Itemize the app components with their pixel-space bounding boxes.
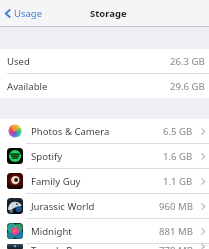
staticText: 1.1 GB — [163, 175, 193, 188]
staticText: Storage — [90, 7, 127, 20]
staticText: 770 MB — [159, 244, 193, 249]
button[interactable]: Spotify — [0, 144, 209, 168]
staticText: Family Guy — [31, 175, 81, 188]
staticText: Temple Run — [31, 244, 85, 249]
staticText: Spotify — [31, 150, 63, 163]
staticText: Usage — [14, 7, 43, 20]
staticText: Used — [7, 55, 30, 68]
button[interactable]: Photos & Camera — [0, 119, 209, 143]
button[interactable]: Back to Usage — [0, 4, 49, 23]
button[interactable]: Available — [0, 74, 209, 98]
button[interactable]: Used — [0, 49, 209, 73]
staticText: 29.6 GB — [170, 80, 205, 93]
staticText: 960 MB — [159, 200, 193, 213]
button[interactable]: Temple Run — [0, 244, 209, 249]
staticText: 1.6 GB — [163, 150, 193, 163]
staticText: Midnight — [31, 225, 72, 238]
staticText: Jurassic World — [31, 200, 95, 213]
staticText: 6.5 GB — [163, 125, 193, 138]
staticText: 26.3 GB — [170, 55, 205, 68]
staticText: Photos & Camera — [31, 125, 110, 138]
staticText: 881 MB — [159, 225, 193, 238]
button[interactable]: Family Guy — [0, 169, 209, 193]
button[interactable]: Midnight — [0, 219, 209, 243]
button[interactable]: Jurassic World — [0, 194, 209, 218]
staticText: Available — [7, 80, 48, 93]
